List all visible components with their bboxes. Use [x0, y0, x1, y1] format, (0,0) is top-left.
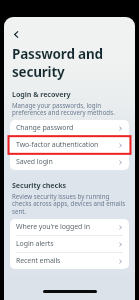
- staticText: Two-factor authentication: [16, 140, 99, 150]
- staticText: Where you're logged in: [16, 222, 90, 232]
- staticText: Review security issues by running checks…: [12, 192, 127, 216]
- button[interactable]: Two-factor authentication: [10, 137, 129, 153]
- staticText: Manage your passwords, login preferences…: [12, 101, 127, 117]
- button[interactable]: Login alerts: [10, 236, 129, 252]
- staticText: Login alerts: [16, 239, 54, 249]
- staticText: Change password: [16, 123, 74, 133]
- staticText: Saved login: [16, 157, 53, 167]
- staticText: Security checks: [12, 180, 67, 190]
- button[interactable]: Change password: [10, 120, 129, 136]
- staticText: Login & recovery: [12, 89, 71, 99]
- staticText: Recent emails: [16, 256, 61, 266]
- button[interactable]: Back: [8, 26, 24, 42]
- staticText: Password and security: [12, 45, 127, 81]
- button[interactable]: Where you're logged in: [10, 219, 129, 235]
- button[interactable]: Saved login: [10, 154, 129, 170]
- button[interactable]: Recent emails: [10, 253, 129, 269]
